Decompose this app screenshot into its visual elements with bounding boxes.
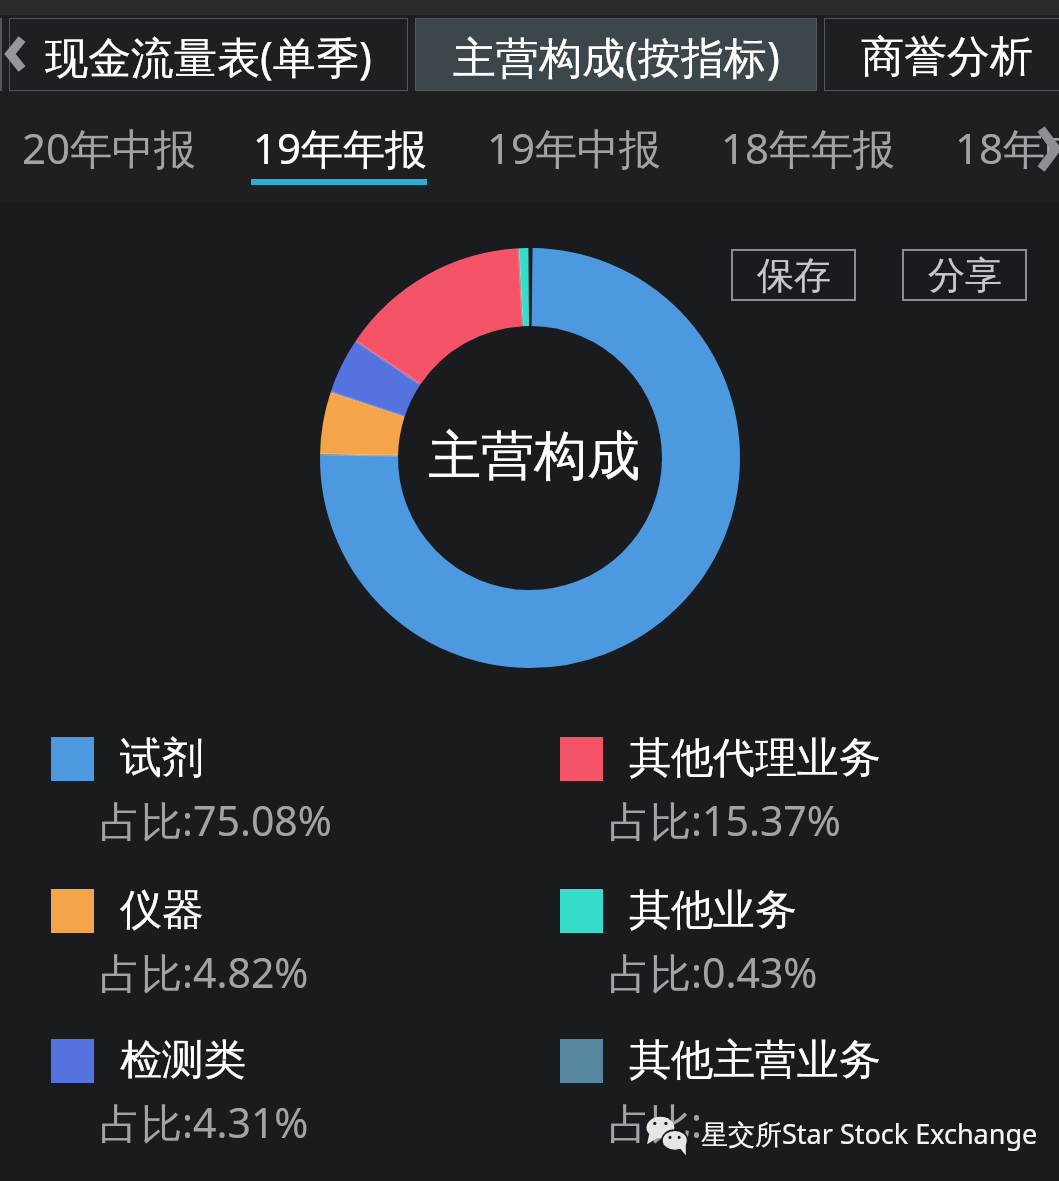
button[interactable]: 仪器 — [51, 889, 501, 1029]
staticText: 占比: — [609, 1094, 702, 1150]
staticText: 占比:75.08% — [100, 792, 332, 848]
staticText: 19年中报 — [487, 119, 662, 176]
staticText: 19年年报 — [253, 119, 428, 176]
button[interactable]: 保存 — [731, 249, 856, 301]
staticText: 主营构成 — [428, 423, 640, 490]
staticText: 现金流量表(单季) — [45, 27, 372, 86]
button[interactable]: 19年中报 — [471, 110, 675, 202]
staticText: 分享 — [928, 252, 1002, 299]
staticText: 星交所Star Stock Exchange — [701, 1115, 1038, 1152]
button[interactable]: 检测类 — [51, 1039, 501, 1179]
staticText: 18年年报 — [721, 119, 896, 176]
staticText: 占比:15.37% — [609, 792, 841, 848]
staticText: 仪器 — [120, 884, 204, 937]
button[interactable]: Next — [1032, 124, 1059, 174]
button[interactable]: 现金流量表(单季) — [9, 18, 408, 91]
button[interactable]: 商誉分析 — [824, 18, 1059, 91]
staticText: 试剂 — [120, 732, 204, 785]
staticText: 保存 — [757, 252, 831, 299]
button[interactable]: 分享 — [902, 249, 1027, 301]
button[interactable]: Previous — [0, 26, 28, 82]
staticText: 其他业务 — [629, 884, 797, 937]
staticText: 主营构成(按指标) — [453, 27, 780, 86]
staticText: 占比:0.43% — [609, 944, 818, 1000]
button[interactable]: 18年年报 — [705, 110, 909, 202]
button[interactable]: 19年年报 — [237, 110, 441, 202]
staticText: 占比:4.82% — [100, 944, 309, 1000]
button[interactable]: 其他代理业务 — [560, 737, 1010, 877]
staticText: 检测类 — [120, 1034, 246, 1087]
staticText: 占比:4.31% — [100, 1094, 309, 1150]
button[interactable]: 试剂 — [51, 737, 501, 877]
staticText: 其他主营业务 — [629, 1034, 881, 1087]
button[interactable]: 18年中报 — [939, 110, 1059, 202]
button[interactable]: 20年中报 — [6, 110, 210, 202]
staticText: 商誉分析 — [861, 30, 1033, 84]
staticText: 18年中报 — [955, 119, 1059, 176]
button[interactable]: 其他业务 — [560, 889, 1010, 1029]
button[interactable]: 其他主营业务 — [560, 1039, 1010, 1179]
staticText: 其他代理业务 — [629, 732, 881, 785]
button[interactable]: 星交所Star Stock Exchange — [646, 1112, 1038, 1155]
button[interactable]: 主营构成(按指标) — [415, 18, 817, 91]
staticText: 20年中报 — [22, 119, 197, 176]
